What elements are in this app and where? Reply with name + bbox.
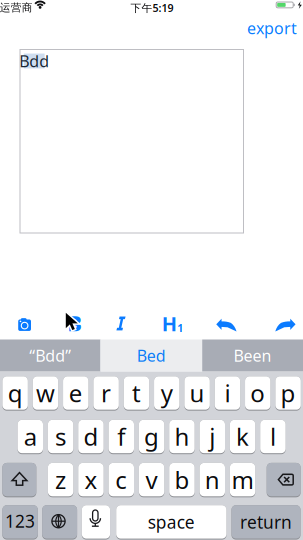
staticText: Bdd <box>19 50 49 72</box>
button[interactable]: space <box>116 505 226 540</box>
button[interactable] <box>113 315 127 331</box>
button[interactable]: o <box>245 376 270 411</box>
button[interactable] <box>42 505 77 540</box>
button[interactable]: s <box>48 420 73 454</box>
staticText: g <box>144 421 159 452</box>
staticText: z <box>55 464 66 496</box>
staticText: d <box>83 421 98 452</box>
staticText: space <box>148 510 195 533</box>
staticText: y <box>161 377 173 409</box>
button[interactable]: j <box>199 420 225 454</box>
button[interactable]: “Bdd” <box>0 339 100 371</box>
button[interactable]: l <box>260 420 286 454</box>
staticText: q <box>8 377 23 409</box>
button[interactable] <box>2 463 36 497</box>
button[interactable]: return <box>231 505 300 540</box>
button[interactable]: 123 <box>2 505 38 540</box>
staticText: r <box>101 377 111 409</box>
button[interactable]: y <box>154 376 179 411</box>
staticText: f <box>117 421 125 452</box>
button[interactable]: i <box>215 376 240 411</box>
button[interactable]: Been <box>202 339 303 371</box>
staticText: u <box>190 377 205 409</box>
button[interactable]: e <box>63 376 88 411</box>
staticText: B <box>67 309 81 337</box>
button[interactable]: k <box>230 420 255 454</box>
button[interactable] <box>267 463 301 497</box>
button[interactable]: w <box>33 376 58 411</box>
button[interactable]: export <box>247 17 297 39</box>
staticText: o <box>250 377 265 409</box>
button[interactable]: Bed <box>100 339 202 371</box>
staticText: export <box>247 17 297 39</box>
staticText: n <box>205 464 220 496</box>
button[interactable] <box>82 505 110 540</box>
staticText: s <box>55 421 66 452</box>
staticText: m <box>232 464 254 496</box>
button[interactable] <box>274 318 296 332</box>
button[interactable]: p <box>275 376 301 411</box>
button[interactable]: f <box>109 420 134 454</box>
staticText: k <box>236 421 249 452</box>
button[interactable]: v <box>139 463 164 497</box>
button[interactable]: c <box>109 463 134 497</box>
staticText: j <box>209 421 215 452</box>
staticText: t <box>132 377 141 409</box>
staticText: l <box>270 421 276 452</box>
staticText: h <box>174 421 189 452</box>
staticText: 123 <box>5 509 35 532</box>
button[interactable]: t <box>124 376 149 411</box>
staticText: a <box>24 421 37 452</box>
button[interactable]: m <box>230 463 255 497</box>
button[interactable]: h <box>169 420 195 454</box>
button[interactable]: g <box>139 420 164 454</box>
button[interactable]: a <box>18 420 43 454</box>
staticText: Bed <box>137 345 166 366</box>
button[interactable] <box>216 318 238 332</box>
staticText: w <box>36 377 55 409</box>
staticText: H <box>162 310 177 337</box>
staticText: b <box>174 464 189 496</box>
staticText: e <box>69 377 83 409</box>
staticText: i <box>224 377 230 409</box>
button[interactable]: q <box>2 376 28 411</box>
staticText: 下午5:19 <box>130 1 173 15</box>
staticText: Been <box>234 345 272 366</box>
button[interactable]: u <box>184 376 210 411</box>
staticText: “Bdd” <box>29 345 71 366</box>
button[interactable]: x <box>78 463 104 497</box>
button[interactable]: z <box>48 463 73 497</box>
button[interactable]: B <box>62 311 86 335</box>
staticText: v <box>146 464 158 496</box>
button[interactable]: b <box>169 463 195 497</box>
button[interactable]: H <box>162 310 183 337</box>
staticText: 运营商 <box>0 1 33 14</box>
button[interactable]: d <box>78 420 104 454</box>
staticText: p <box>281 377 296 409</box>
staticText: c <box>115 464 127 496</box>
button[interactable]: n <box>199 463 225 497</box>
staticText: x <box>84 464 97 496</box>
staticText: 1 <box>177 321 183 335</box>
button[interactable] <box>18 317 31 331</box>
button[interactable]: r <box>93 376 119 411</box>
staticText: return <box>240 510 292 533</box>
